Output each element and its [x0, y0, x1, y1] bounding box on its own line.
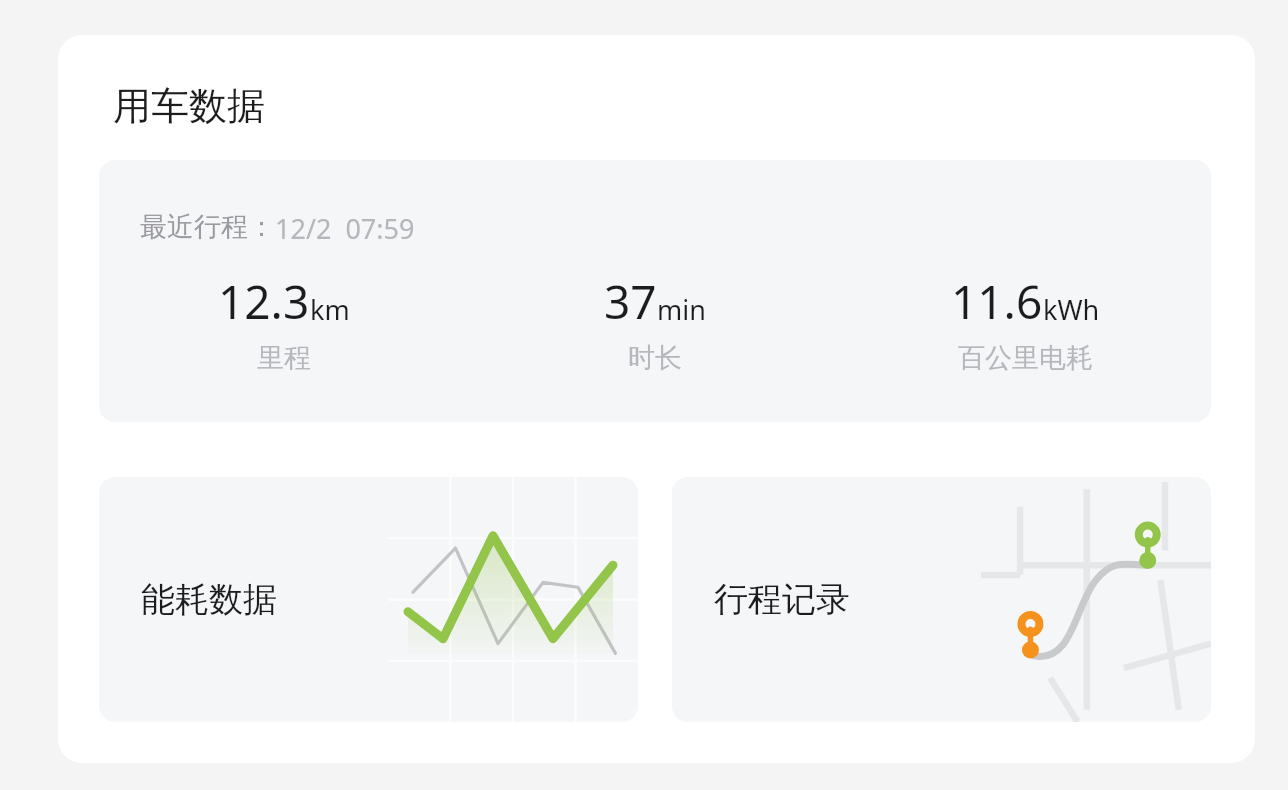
- staticText: km: [310, 291, 350, 328]
- staticText: 12/2 07:59: [275, 210, 415, 247]
- button[interactable]: 最近行程：: [99, 160, 1211, 422]
- staticText: min: [657, 291, 706, 328]
- staticText: 最近行程：: [140, 210, 275, 244]
- staticText: 里程: [257, 341, 311, 375]
- staticText: kWh: [1043, 291, 1100, 328]
- staticText: 12.3: [218, 270, 310, 333]
- button[interactable]: 能耗数据: [99, 477, 638, 722]
- staticText: 行程记录: [714, 578, 850, 621]
- staticText: 时长: [628, 341, 682, 375]
- staticText: 能耗数据: [141, 578, 277, 621]
- button[interactable]: 行程记录: [672, 477, 1211, 722]
- staticText: 11.6: [951, 270, 1043, 333]
- staticText: 37: [604, 270, 657, 333]
- staticText: 用车数据: [113, 82, 265, 130]
- staticText: 百公里电耗: [958, 341, 1093, 375]
- other: Trip map: [981, 477, 1211, 722]
